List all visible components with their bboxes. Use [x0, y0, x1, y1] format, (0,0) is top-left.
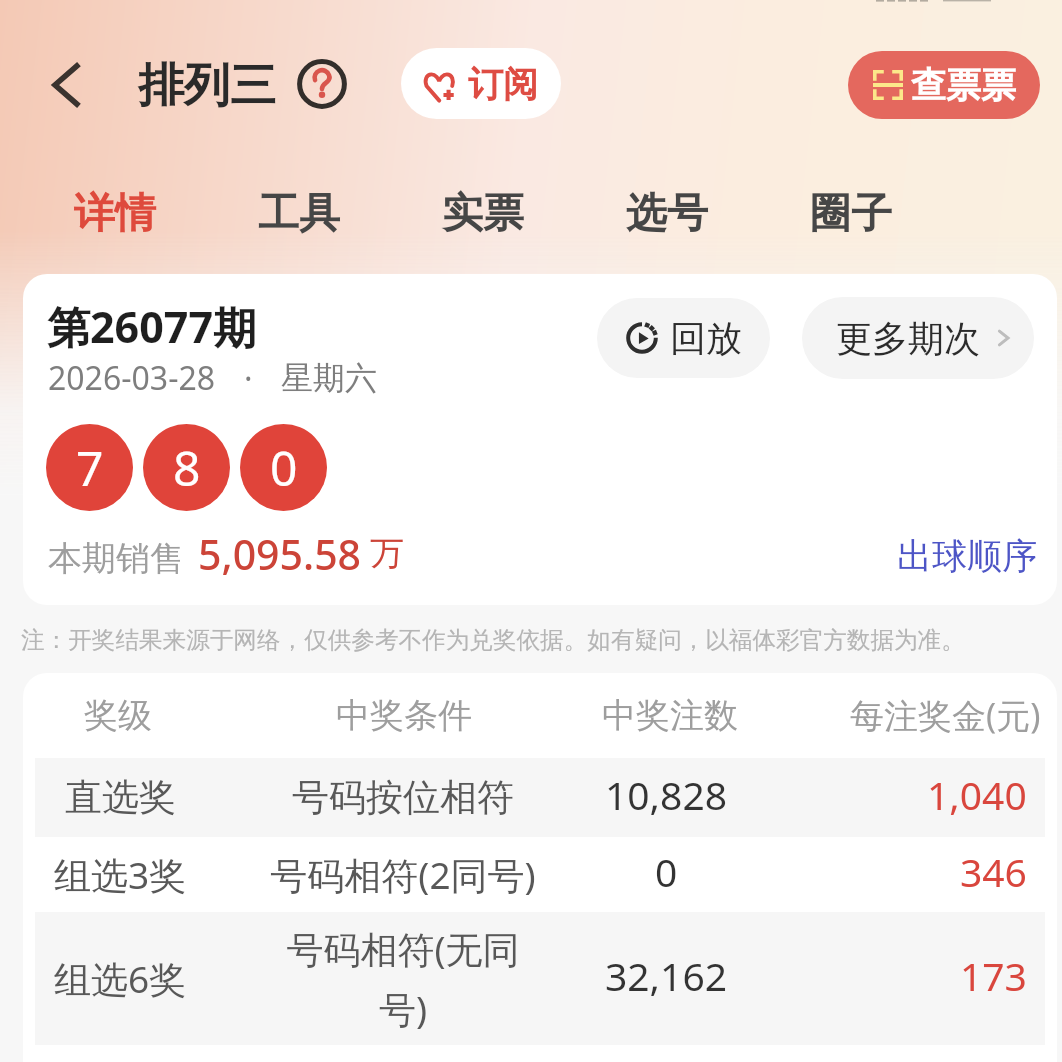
staticText: 中奖注数: [602, 694, 738, 737]
button[interactable]: 实票: [413, 175, 553, 253]
staticText: 详情: [74, 188, 156, 240]
staticText: 排列三: [138, 57, 276, 115]
staticText: 10,828: [605, 768, 727, 821]
button[interactable]: Help: [297, 59, 347, 109]
staticText: 圈子: [810, 188, 892, 240]
staticText: 号码按位相符: [292, 774, 514, 821]
button[interactable]: 出球顺序: [883, 526, 1052, 586]
staticText: 0: [655, 845, 678, 898]
staticText: 注：开奖结果来源于网络，仅供参考不作为兑奖依据。如有疑问，以福体彩官方数据为准。: [21, 625, 965, 655]
staticText: 直选奖: [65, 774, 176, 821]
button[interactable]: 组选6奖: [35, 912, 1045, 1045]
staticText: 32,162: [605, 949, 727, 1002]
staticText: 8: [173, 435, 201, 500]
staticText: 号码相符(2同号): [270, 849, 536, 900]
staticText: ·: [244, 356, 253, 400]
staticText: 7: [76, 435, 104, 500]
button[interactable]: Back: [33, 51, 101, 119]
staticText: 工具: [258, 188, 340, 240]
staticText: 中奖条件: [336, 694, 472, 737]
staticText: 实票: [442, 188, 524, 240]
button[interactable]: 回放: [597, 298, 770, 378]
staticText: 万: [370, 532, 404, 575]
staticText: 奖级: [84, 694, 152, 737]
button[interactable]: 组选3奖: [35, 837, 1045, 912]
button[interactable]: 订阅: [401, 48, 561, 119]
button[interactable]: 圈子: [781, 175, 921, 253]
staticText: 2026-03-28: [48, 356, 216, 400]
staticText: 173: [960, 949, 1027, 1002]
staticText: 本期销售: [48, 537, 184, 580]
staticText: 0: [270, 435, 298, 500]
button[interactable]: 更多期次: [802, 297, 1034, 379]
staticText: 星期六: [281, 358, 377, 398]
staticText: 组选3奖: [54, 849, 187, 900]
staticText: 组选6奖: [54, 953, 187, 1004]
staticText: 订阅: [468, 62, 538, 106]
staticText: 出球顺序: [897, 534, 1037, 578]
staticText: 更多期次: [836, 316, 980, 361]
staticText: 每注奖金(元): [850, 692, 1041, 738]
button[interactable]: 选号: [597, 175, 737, 253]
button[interactable]: 工具: [229, 175, 369, 253]
staticText: 346: [960, 845, 1027, 898]
staticText: 5,095.58: [198, 526, 362, 582]
staticText: 选号: [626, 188, 708, 240]
button[interactable]: 详情: [45, 175, 185, 253]
staticText: 号码相符(无同 号): [286, 923, 520, 1034]
staticText: 第26077期: [47, 297, 256, 356]
staticText: 回放: [670, 316, 742, 361]
button[interactable]: 直选奖: [35, 758, 1045, 837]
staticText: 1,040: [927, 768, 1027, 821]
staticText: 查票票: [911, 63, 1016, 107]
button[interactable]: 查票票: [848, 51, 1040, 119]
